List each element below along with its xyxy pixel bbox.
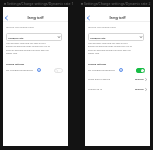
staticText: Tariff in your energy tariff	[88, 26, 116, 29]
staticText: Settings/Charge settings/Dynamic rate 2	[84, 1, 151, 6]
button[interactable]: When plug in before	[85, 75, 150, 84]
staticText: Set charging preferences	[6, 69, 33, 72]
staticText: Charge up to	[88, 88, 103, 91]
staticText: Settings/Charge settings/Dynamic rate 1	[7, 1, 74, 6]
staticText: Variable rate	[90, 36, 106, 39]
staticText: Charge settings	[6, 63, 25, 66]
button[interactable]: Variable rate	[88, 33, 144, 41]
button[interactable]: Back	[3, 15, 9, 21]
staticText: With dynamic rate tariff you save in you…	[6, 42, 46, 45]
button[interactable]: Set charging preferences	[85, 66, 150, 74]
button[interactable]: Charge up to	[85, 85, 150, 94]
staticText: Manual	[135, 88, 144, 91]
staticText: energy bill because tariffs charge your …	[88, 45, 132, 48]
button[interactable]: Back	[85, 15, 91, 21]
staticText: With dynamic rate tariff you save in you…	[88, 42, 128, 45]
staticText: Energy tariff	[3, 16, 68, 20]
button[interactable]: Variable rate	[6, 33, 62, 41]
staticText: much as possible during the hours with t…	[6, 49, 49, 52]
staticText: Tariff in your energy tariff	[6, 26, 34, 29]
staticText: Set charging preferences	[88, 69, 115, 72]
staticText: Energy tariff	[85, 16, 150, 20]
staticText: lowest rate.	[6, 52, 18, 55]
staticText: Charge settings	[88, 63, 107, 66]
staticText: Variable rate	[8, 36, 24, 39]
staticText: lowest rate.	[88, 52, 100, 55]
staticText: energy bill because tariffs charge your …	[6, 45, 50, 48]
staticText: Manual	[135, 78, 144, 81]
staticText: much as possible during the hours with t…	[88, 49, 131, 52]
staticText: When plug in before	[88, 78, 110, 81]
button[interactable]: Set charging preferences	[3, 66, 68, 74]
